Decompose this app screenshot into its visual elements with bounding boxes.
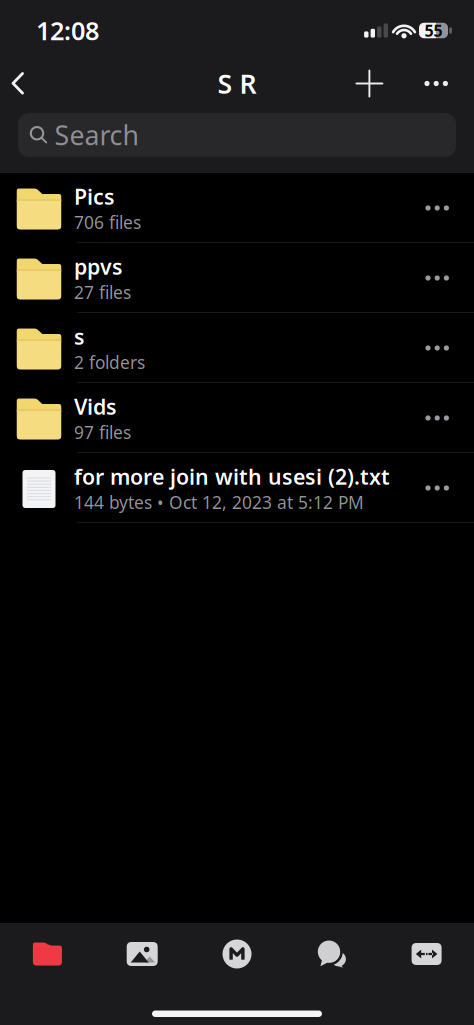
staticText: 97 files [74, 421, 131, 444]
staticText: Pics [74, 182, 115, 211]
staticText: 2 folders [74, 351, 145, 374]
staticText: 144 bytes • Oct 12, 2023 at 5:12 PM [74, 491, 364, 514]
staticText: 27 files [74, 281, 131, 304]
button[interactable]: for more join with usesi (2).txt [0, 453, 417, 523]
button[interactable]: More options [417, 415, 474, 421]
button[interactable]: Pics [0, 173, 417, 243]
button[interactable]: Files [0, 939, 95, 969]
button[interactable]: MEGA [190, 939, 284, 969]
button[interactable]: More options [417, 275, 474, 281]
staticText: ppvs [74, 252, 123, 281]
staticText: 706 files [74, 211, 141, 234]
staticText: 12:08 [36, 14, 99, 47]
button[interactable]: Chat [284, 939, 379, 969]
button[interactable]: ppvs [0, 243, 417, 313]
button[interactable]: More options [417, 345, 474, 351]
button[interactable]: Search [0, 113, 474, 157]
button[interactable]: More [424, 81, 474, 86]
staticText: Search [54, 117, 138, 153]
button[interactable]: More options [417, 485, 474, 491]
staticText: S R [217, 66, 256, 101]
staticText: 55 [424, 20, 442, 41]
button[interactable]: Photos [95, 939, 190, 969]
button[interactable]: s [0, 313, 417, 383]
button[interactable]: More options [417, 205, 474, 211]
button[interactable]: Transfers [379, 939, 474, 969]
button[interactable]: Add [356, 70, 382, 96]
staticText: for more join with usesi (2).txt [74, 462, 390, 491]
button[interactable]: Back [0, 72, 24, 94]
staticText: s [74, 322, 85, 351]
button[interactable]: Vids [0, 383, 417, 453]
staticText: Vids [74, 392, 117, 421]
